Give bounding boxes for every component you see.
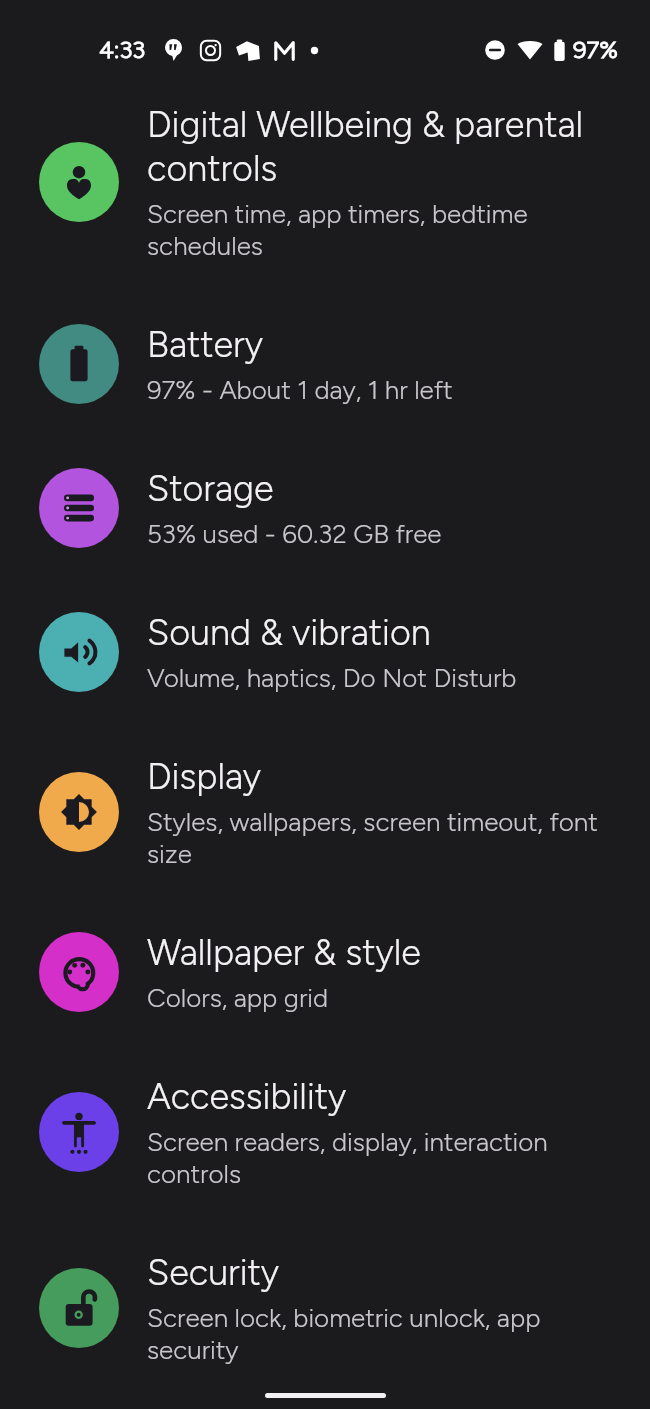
staticText: Display [147, 754, 262, 798]
staticText: Screen readers, display, interaction con… [147, 1126, 622, 1190]
button[interactable]: Security [0, 1220, 650, 1396]
staticText: 97% - About 1 day, 1 hr left [147, 374, 453, 406]
staticText: Battery [147, 322, 263, 366]
button[interactable]: Sound & vibration [0, 580, 650, 724]
staticText: Colors, app grid [147, 982, 329, 1014]
staticText: Volume, haptics, Do Not Disturb [147, 662, 517, 694]
button[interactable]: Battery [0, 292, 650, 436]
staticText: Styles, wallpapers, screen timeout, font… [147, 806, 622, 870]
staticText: Sound & vibration [147, 610, 431, 654]
staticText: Digital Wellbeing & parental controls [147, 102, 622, 190]
staticText: Security [147, 1250, 280, 1294]
button[interactable]: Digital Wellbeing & parental controls [0, 72, 650, 292]
button[interactable]: Storage [0, 436, 650, 580]
staticText: Accessibility [147, 1074, 347, 1118]
button[interactable]: Display [0, 724, 650, 900]
staticText: Wallpaper & style [147, 930, 421, 974]
button[interactable]: Accessibility [0, 1044, 650, 1220]
staticText: 4:33 [99, 36, 146, 64]
staticText: Storage [147, 466, 274, 510]
staticText: Screen lock, biometric unlock, app secur… [147, 1302, 622, 1366]
button[interactable]: Wallpaper & style [0, 900, 650, 1044]
staticText: Screen time, app timers, bedtime schedul… [147, 198, 622, 262]
staticText: 97% [573, 36, 618, 64]
staticText: 53% used - 60.32 GB free [147, 518, 442, 550]
